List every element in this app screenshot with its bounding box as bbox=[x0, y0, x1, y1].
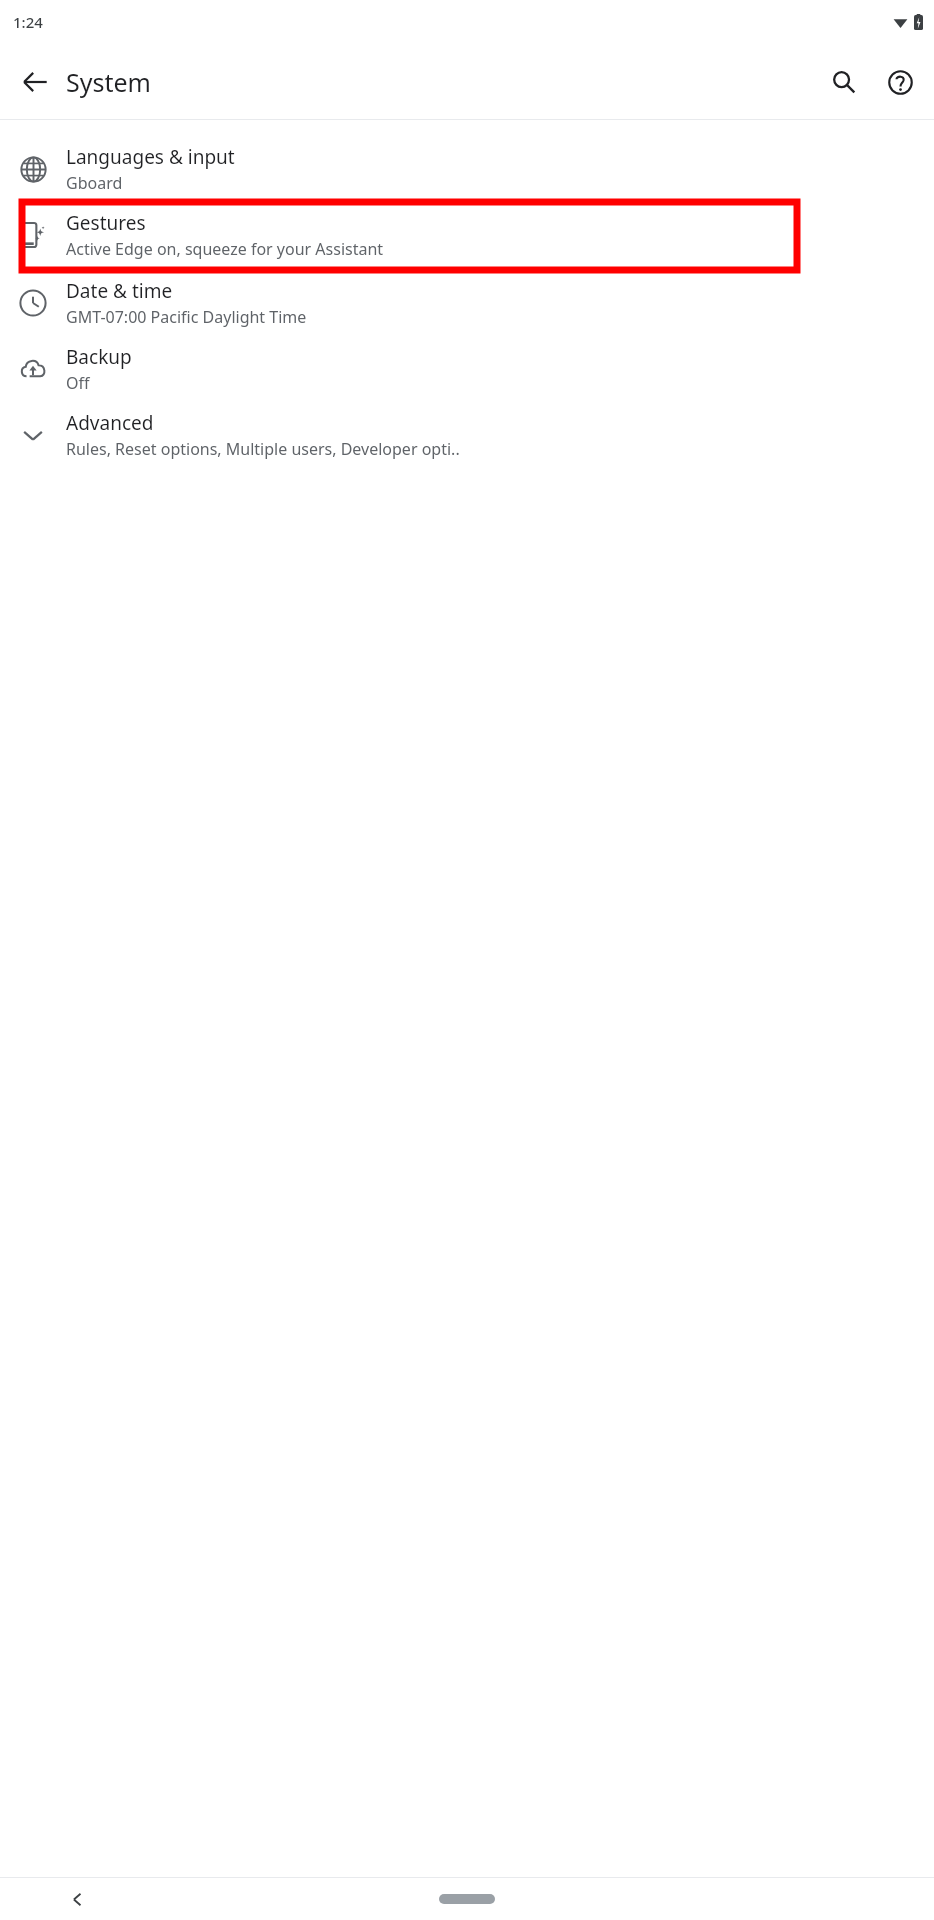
button[interactable]: Advanced bbox=[0, 402, 934, 468]
button[interactable]: Search bbox=[820, 58, 868, 106]
staticText: Advanced bbox=[66, 410, 154, 436]
staticText: 1:24 bbox=[13, 12, 43, 32]
button[interactable]: Back bbox=[11, 58, 59, 106]
staticText: Date & time bbox=[66, 278, 173, 304]
staticText: Active Edge on, squeeze for your Assista… bbox=[66, 238, 384, 260]
staticText: Off bbox=[66, 372, 90, 394]
button[interactable]: Date & time bbox=[0, 270, 934, 336]
staticText: Backup bbox=[66, 344, 132, 370]
staticText: System bbox=[66, 65, 151, 99]
button[interactable]: Languages & input bbox=[0, 136, 934, 202]
button[interactable]: Gestures bbox=[0, 202, 934, 268]
button[interactable]: Home bbox=[432, 1887, 502, 1911]
staticText: Gestures bbox=[66, 210, 146, 236]
button[interactable]: Help bbox=[876, 58, 924, 106]
staticText: Languages & input bbox=[66, 144, 235, 170]
button[interactable]: Back bbox=[58, 1880, 96, 1918]
staticText: Gboard bbox=[66, 172, 123, 194]
staticText: GMT-07:00 Pacific Daylight Time bbox=[66, 306, 307, 328]
staticText: Rules, Reset options, Multiple users, De… bbox=[66, 438, 460, 460]
button[interactable]: Backup bbox=[0, 336, 934, 402]
